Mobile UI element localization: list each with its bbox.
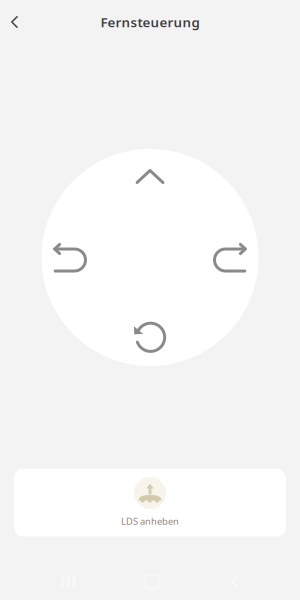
staticText: Fernsteuerung xyxy=(100,13,199,31)
button[interactable]: LDS anheben xyxy=(14,469,286,536)
button[interactable]: Turn right xyxy=(204,235,256,281)
button[interactable]: Back xyxy=(0,4,32,40)
button[interactable]: Turn left xyxy=(44,235,96,281)
staticText: LDS anheben xyxy=(121,515,179,527)
button[interactable]: Rotate xyxy=(125,311,177,363)
button[interactable]: Forward xyxy=(126,160,173,193)
